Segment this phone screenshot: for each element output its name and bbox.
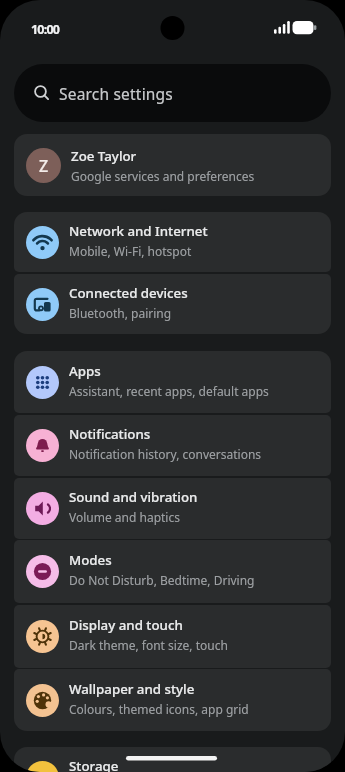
staticText: Display and touch: [69, 616, 183, 634]
button[interactable]: Network and Internet: [14, 212, 331, 272]
staticText: Dark theme, font size, touch: [69, 637, 228, 653]
staticText: Bluetooth, pairing: [69, 305, 172, 321]
staticText: Zoe Taylor: [71, 147, 137, 165]
staticText: Storage: [69, 757, 119, 772]
staticText: Do Not Disturb, Bedtime, Driving: [69, 572, 255, 588]
staticText: Notifications: [69, 425, 151, 443]
staticText: Wallpaper and style: [69, 680, 195, 698]
button[interactable]: Apps: [14, 351, 331, 413]
staticText: Assistant, recent apps, default apps: [69, 383, 269, 399]
button[interactable]: Search settings: [14, 64, 331, 122]
staticText: Search settings: [59, 83, 173, 104]
staticText: Z: [39, 155, 49, 177]
button[interactable]: Connected devices: [14, 274, 331, 334]
staticText: Sound and vibration: [69, 488, 198, 506]
staticText: Google services and preferences: [71, 168, 255, 184]
staticText: Mobile, Wi-Fi, hotspot: [69, 243, 192, 259]
staticText: Network and Internet: [69, 222, 208, 240]
button[interactable]: Notifications: [14, 415, 331, 476]
staticText: Notification history, conversations: [69, 446, 262, 462]
staticText: Apps: [69, 362, 101, 380]
staticText: Volume and haptics: [69, 509, 180, 525]
button[interactable]: Z: [14, 134, 331, 196]
button[interactable]: Modes: [14, 540, 331, 603]
button[interactable]: Storage: [14, 747, 331, 772]
staticText: Colours, themed icons, app grid: [69, 701, 249, 717]
staticText: Modes: [69, 551, 112, 569]
button[interactable]: Display and touch: [14, 605, 331, 668]
staticText: Connected devices: [69, 284, 188, 302]
staticText: 10:00: [31, 21, 60, 38]
button[interactable]: Sound and vibration: [14, 478, 331, 539]
button[interactable]: Wallpaper and style: [14, 669, 331, 731]
